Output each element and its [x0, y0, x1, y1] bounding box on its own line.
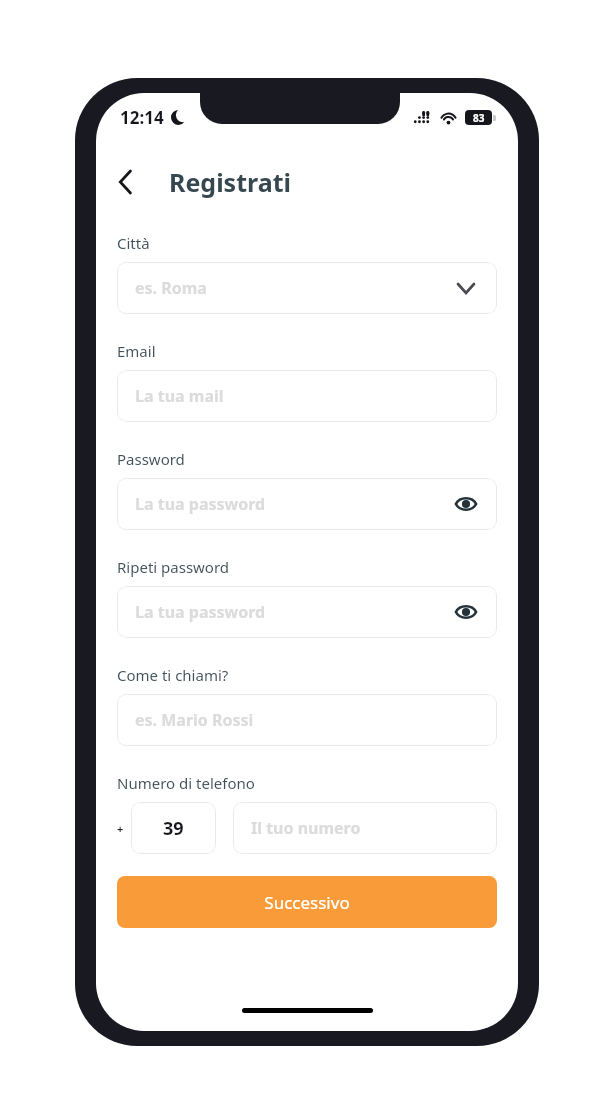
staticText: es. Mario Rossi [135, 709, 254, 731]
staticText: Città [117, 233, 150, 253]
staticText: Il tuo numero [251, 817, 361, 839]
button[interactable]: Il tuo numero [233, 802, 497, 854]
staticText: Email [117, 341, 156, 361]
staticText: + [117, 821, 124, 836]
button[interactable]: Show password [449, 487, 483, 521]
button[interactable]: Back [104, 163, 146, 201]
button[interactable]: La tua password [117, 586, 497, 638]
button[interactable]: es. Mario Rossi [117, 694, 497, 746]
staticText: Numero di telefono [117, 773, 255, 793]
staticText: 83 [473, 111, 485, 125]
button[interactable]: Successivo [117, 876, 497, 928]
staticText: 12:14 [120, 106, 164, 129]
staticText: es. Roma [135, 277, 207, 299]
staticText: Successivo [264, 891, 350, 914]
staticText: La tua password [135, 493, 266, 515]
staticText: 39 [163, 816, 184, 841]
staticText: La tua mail [135, 385, 224, 407]
staticText: Come ti chiami? [117, 665, 229, 685]
staticText: Registrati [169, 165, 291, 199]
staticText: Ripeti password [117, 557, 230, 577]
button[interactable]: Open dropdown [449, 271, 483, 305]
button[interactable]: La tua password [117, 478, 497, 530]
button[interactable]: La tua mail [117, 370, 497, 422]
staticText: Password [117, 449, 185, 469]
button[interactable]: Show password [449, 595, 483, 629]
button[interactable]: es. Roma [117, 262, 497, 314]
button[interactable]: 39 [131, 802, 216, 854]
staticText: La tua password [135, 601, 266, 623]
